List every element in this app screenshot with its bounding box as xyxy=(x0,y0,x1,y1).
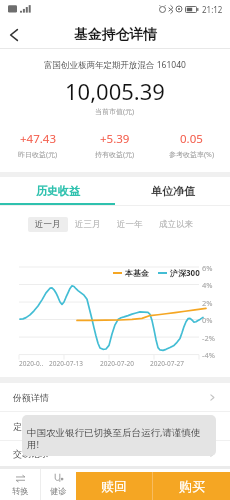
staticText: 0.05 xyxy=(180,131,203,147)
button[interactable]: 购买 xyxy=(153,472,230,500)
staticText: 购买 xyxy=(179,478,205,494)
button[interactable]: 近一月 xyxy=(28,217,68,232)
button[interactable]: 赎回 xyxy=(76,472,152,500)
staticText: 4% xyxy=(202,280,213,290)
staticText: 2020-07-20 xyxy=(100,359,134,368)
staticText: 成立以来 xyxy=(159,219,193,230)
button[interactable]: 近一年 xyxy=(110,217,150,232)
staticText: 近一年 xyxy=(117,219,143,230)
staticText: 单位净值 xyxy=(151,184,195,198)
staticText: 当前市值(元) xyxy=(95,107,135,117)
staticText: 近一月 xyxy=(35,219,61,230)
staticText: 2020-07-13 xyxy=(49,359,83,368)
staticText: +47.43 xyxy=(20,131,56,147)
staticText: 2020-07-27 xyxy=(150,359,184,368)
staticText: 基金持仓详情 xyxy=(74,26,157,43)
button[interactable]: 转换 xyxy=(0,469,40,500)
button[interactable]: 份额详情 xyxy=(0,383,230,411)
staticText: +5.39 xyxy=(100,131,130,147)
button[interactable]: 交易记录 xyxy=(0,441,230,466)
staticText: 2% xyxy=(202,298,213,308)
button[interactable]: 近三月 xyxy=(68,217,108,232)
staticText: 历史收益 xyxy=(36,184,80,198)
staticText: 本基金 xyxy=(125,268,149,278)
staticText: 份额详情 xyxy=(13,392,49,403)
staticText: 沪深300 xyxy=(170,267,200,278)
button[interactable]: 定投详情 xyxy=(0,412,230,440)
staticText: -2% xyxy=(202,333,215,343)
staticText: 10,005.39 xyxy=(65,76,165,106)
staticText: 交易记录 xyxy=(13,448,49,459)
staticText: 2020-0.. xyxy=(19,359,44,368)
staticText: 21:12 xyxy=(202,4,223,15)
staticText: 昨日收益(元) xyxy=(18,150,58,160)
staticText: 0% xyxy=(202,315,213,325)
staticText: 健诊 xyxy=(50,486,67,496)
staticText: 赎回 xyxy=(101,478,127,494)
staticText: 6% xyxy=(202,263,213,273)
staticText: 持有收益(元) xyxy=(95,150,135,160)
button[interactable]: 单位净值 xyxy=(115,177,230,205)
staticText: 转换 xyxy=(12,486,29,496)
staticText: 参考收益率(%) xyxy=(169,150,215,160)
button[interactable]: 健诊 xyxy=(41,469,76,500)
staticText: -4% xyxy=(202,350,215,360)
staticText: 富国创业板两年定期开放混合 161040 xyxy=(44,59,186,71)
button[interactable]: Back xyxy=(0,21,28,48)
staticText: 定投详情 xyxy=(13,421,49,432)
staticText: 近三月 xyxy=(75,219,101,230)
button[interactable]: 成立以来 xyxy=(152,217,200,232)
button[interactable]: 历史收益 xyxy=(0,177,115,205)
staticText: 中国农业银行已切换至后台运行,请谨慎使用! xyxy=(27,426,211,450)
